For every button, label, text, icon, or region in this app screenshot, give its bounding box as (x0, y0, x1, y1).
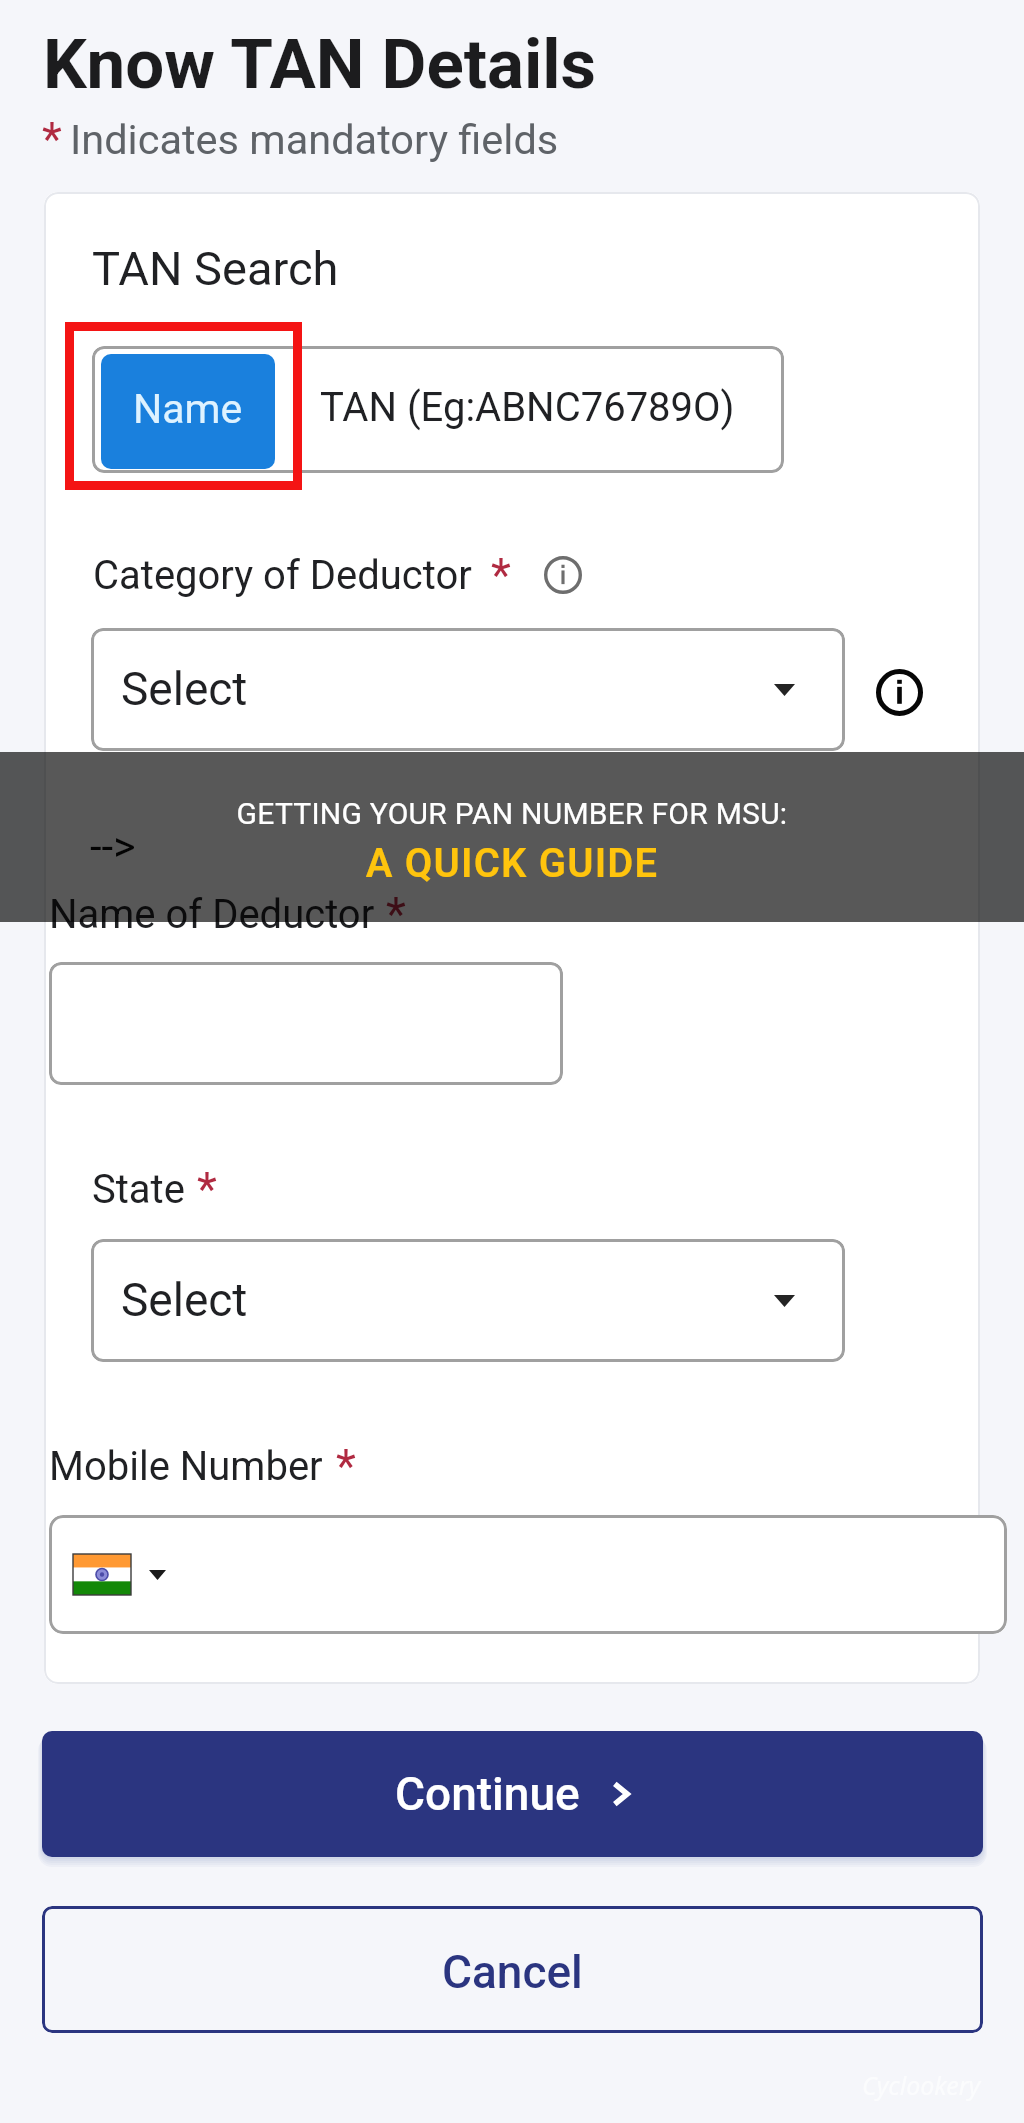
button[interactable]: Select (91, 628, 845, 751)
button[interactable]: Cancel (42, 1906, 983, 2033)
button[interactable]: More information (876, 669, 923, 716)
button[interactable] (49, 962, 563, 1085)
button[interactable]: Continue (42, 1731, 983, 1857)
staticText: Indicates mandatory fields (70, 115, 559, 164)
staticText: Cancel (442, 1945, 583, 1999)
staticText: Select (121, 662, 248, 716)
staticText: Continue (395, 1767, 580, 1821)
staticText: Know TAN Details (43, 24, 596, 105)
button[interactable]: Select (91, 1239, 845, 1362)
button[interactable]: Name (101, 354, 275, 469)
staticText: TAN Search (92, 241, 339, 296)
staticText: * (336, 1439, 356, 1493)
button[interactable]: Information about category of deductor (544, 556, 582, 594)
staticText: Name of Deductor (49, 891, 375, 938)
staticText: * (491, 548, 511, 602)
staticText: State (92, 1166, 185, 1213)
staticText: --> (90, 822, 136, 871)
staticText: A QUICK GUIDE (0, 840, 1024, 887)
staticText: Select (121, 1273, 248, 1327)
staticText: * (42, 112, 62, 166)
staticText: * (197, 1162, 217, 1216)
staticText: TAN (Eg:ABNC76789O) (320, 384, 735, 431)
staticText: * (386, 887, 406, 941)
staticText: Mobile Number (49, 1443, 323, 1490)
staticText: GETTING YOUR PAN NUMBER FOR MSU: (0, 796, 1024, 831)
button[interactable] (92, 346, 784, 473)
staticText: Name (133, 385, 243, 433)
staticText: Category of Deductor (93, 552, 472, 599)
button[interactable] (49, 1515, 1007, 1634)
